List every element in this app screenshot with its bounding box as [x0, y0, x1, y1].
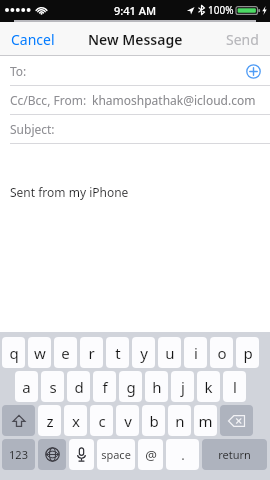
staticText: Send — [226, 30, 259, 49]
staticText: k — [204, 377, 213, 397]
staticText: Cancel — [11, 30, 55, 49]
button[interactable]: x — [64, 405, 87, 436]
button[interactable]: t — [106, 337, 129, 368]
button[interactable]: w — [28, 337, 51, 368]
staticText: l — [233, 377, 237, 397]
button[interactable]: m — [194, 405, 217, 436]
button[interactable]: y — [132, 337, 155, 368]
staticText: m — [198, 411, 213, 431]
staticText: v — [124, 411, 132, 431]
button[interactable]: Subject: — [0, 115, 270, 143]
staticText: To: — [10, 63, 27, 79]
button[interactable]: p — [236, 337, 259, 368]
staticText: e — [61, 343, 70, 363]
button[interactable]: return — [202, 439, 267, 470]
staticText: d — [74, 377, 84, 397]
button[interactable]: 123 — [2, 439, 35, 470]
button[interactable]: Delete — [220, 405, 253, 436]
staticText: . — [181, 446, 185, 464]
staticText: New Message — [88, 30, 183, 49]
staticText: f — [102, 377, 108, 397]
button[interactable]: h — [145, 371, 168, 402]
staticText: o — [217, 343, 227, 363]
button[interactable]: Switch keyboard — [38, 439, 66, 470]
button[interactable]: @ — [138, 439, 163, 470]
staticText: j — [181, 377, 185, 397]
staticText: 100% — [208, 3, 234, 17]
button[interactable]: . — [166, 439, 199, 470]
button[interactable]: Cancel — [0, 23, 66, 56]
button[interactable]: n — [168, 405, 191, 436]
button[interactable]: space — [97, 439, 135, 470]
staticText: h — [152, 377, 162, 397]
staticText: x — [72, 411, 80, 431]
staticText: r — [88, 343, 95, 363]
button[interactable]: Send — [215, 23, 270, 56]
button[interactable]: c — [90, 405, 113, 436]
button[interactable]: v — [116, 405, 139, 436]
button[interactable]: i — [184, 337, 207, 368]
button[interactable]: s — [41, 371, 64, 402]
staticText: Sent from my iPhone — [10, 184, 129, 200]
button[interactable]: a — [15, 371, 38, 402]
staticText: z — [46, 411, 54, 431]
button[interactable]: q — [2, 337, 25, 368]
staticText: return — [218, 447, 251, 462]
button[interactable]: j — [171, 371, 194, 402]
button[interactable]: Cc/Bcc, From: — [0, 86, 270, 114]
staticText: t — [115, 343, 121, 363]
staticText: w — [34, 343, 46, 363]
staticText: khamoshpathak@icloud.com — [92, 92, 256, 108]
button[interactable]: k — [197, 371, 220, 402]
button[interactable]: To: — [0, 56, 270, 85]
staticText: u — [165, 343, 175, 363]
button[interactable]: u — [158, 337, 181, 368]
button[interactable]: g — [119, 371, 142, 402]
button[interactable]: d — [67, 371, 90, 402]
staticText: 123 — [9, 447, 28, 462]
button[interactable]: r — [80, 337, 103, 368]
staticText: c — [98, 411, 106, 431]
button[interactable]: Dictate — [69, 439, 94, 470]
button[interactable]: l — [223, 371, 246, 402]
button[interactable]: z — [38, 405, 61, 436]
staticText: q — [9, 343, 19, 363]
staticText: g — [126, 377, 136, 397]
staticText: b — [149, 411, 159, 431]
button[interactable]: b — [142, 405, 165, 436]
button[interactable]: e — [54, 337, 77, 368]
staticText: i — [194, 343, 198, 363]
staticText: s — [49, 377, 57, 397]
staticText: n — [175, 411, 185, 431]
staticText: a — [22, 377, 31, 397]
staticText: 9:41 AM — [114, 3, 157, 18]
button[interactable]: f — [93, 371, 116, 402]
staticText: Subject: — [10, 121, 55, 137]
button[interactable]: Add contact — [242, 60, 264, 82]
staticText: @ — [145, 446, 157, 464]
button[interactable]: o — [210, 337, 233, 368]
staticText: p — [243, 343, 253, 363]
staticText: Cc/Bcc, From: — [10, 92, 87, 108]
button[interactable]: Shift — [2, 405, 35, 436]
staticText: y — [140, 343, 148, 363]
staticText: space — [101, 447, 131, 462]
